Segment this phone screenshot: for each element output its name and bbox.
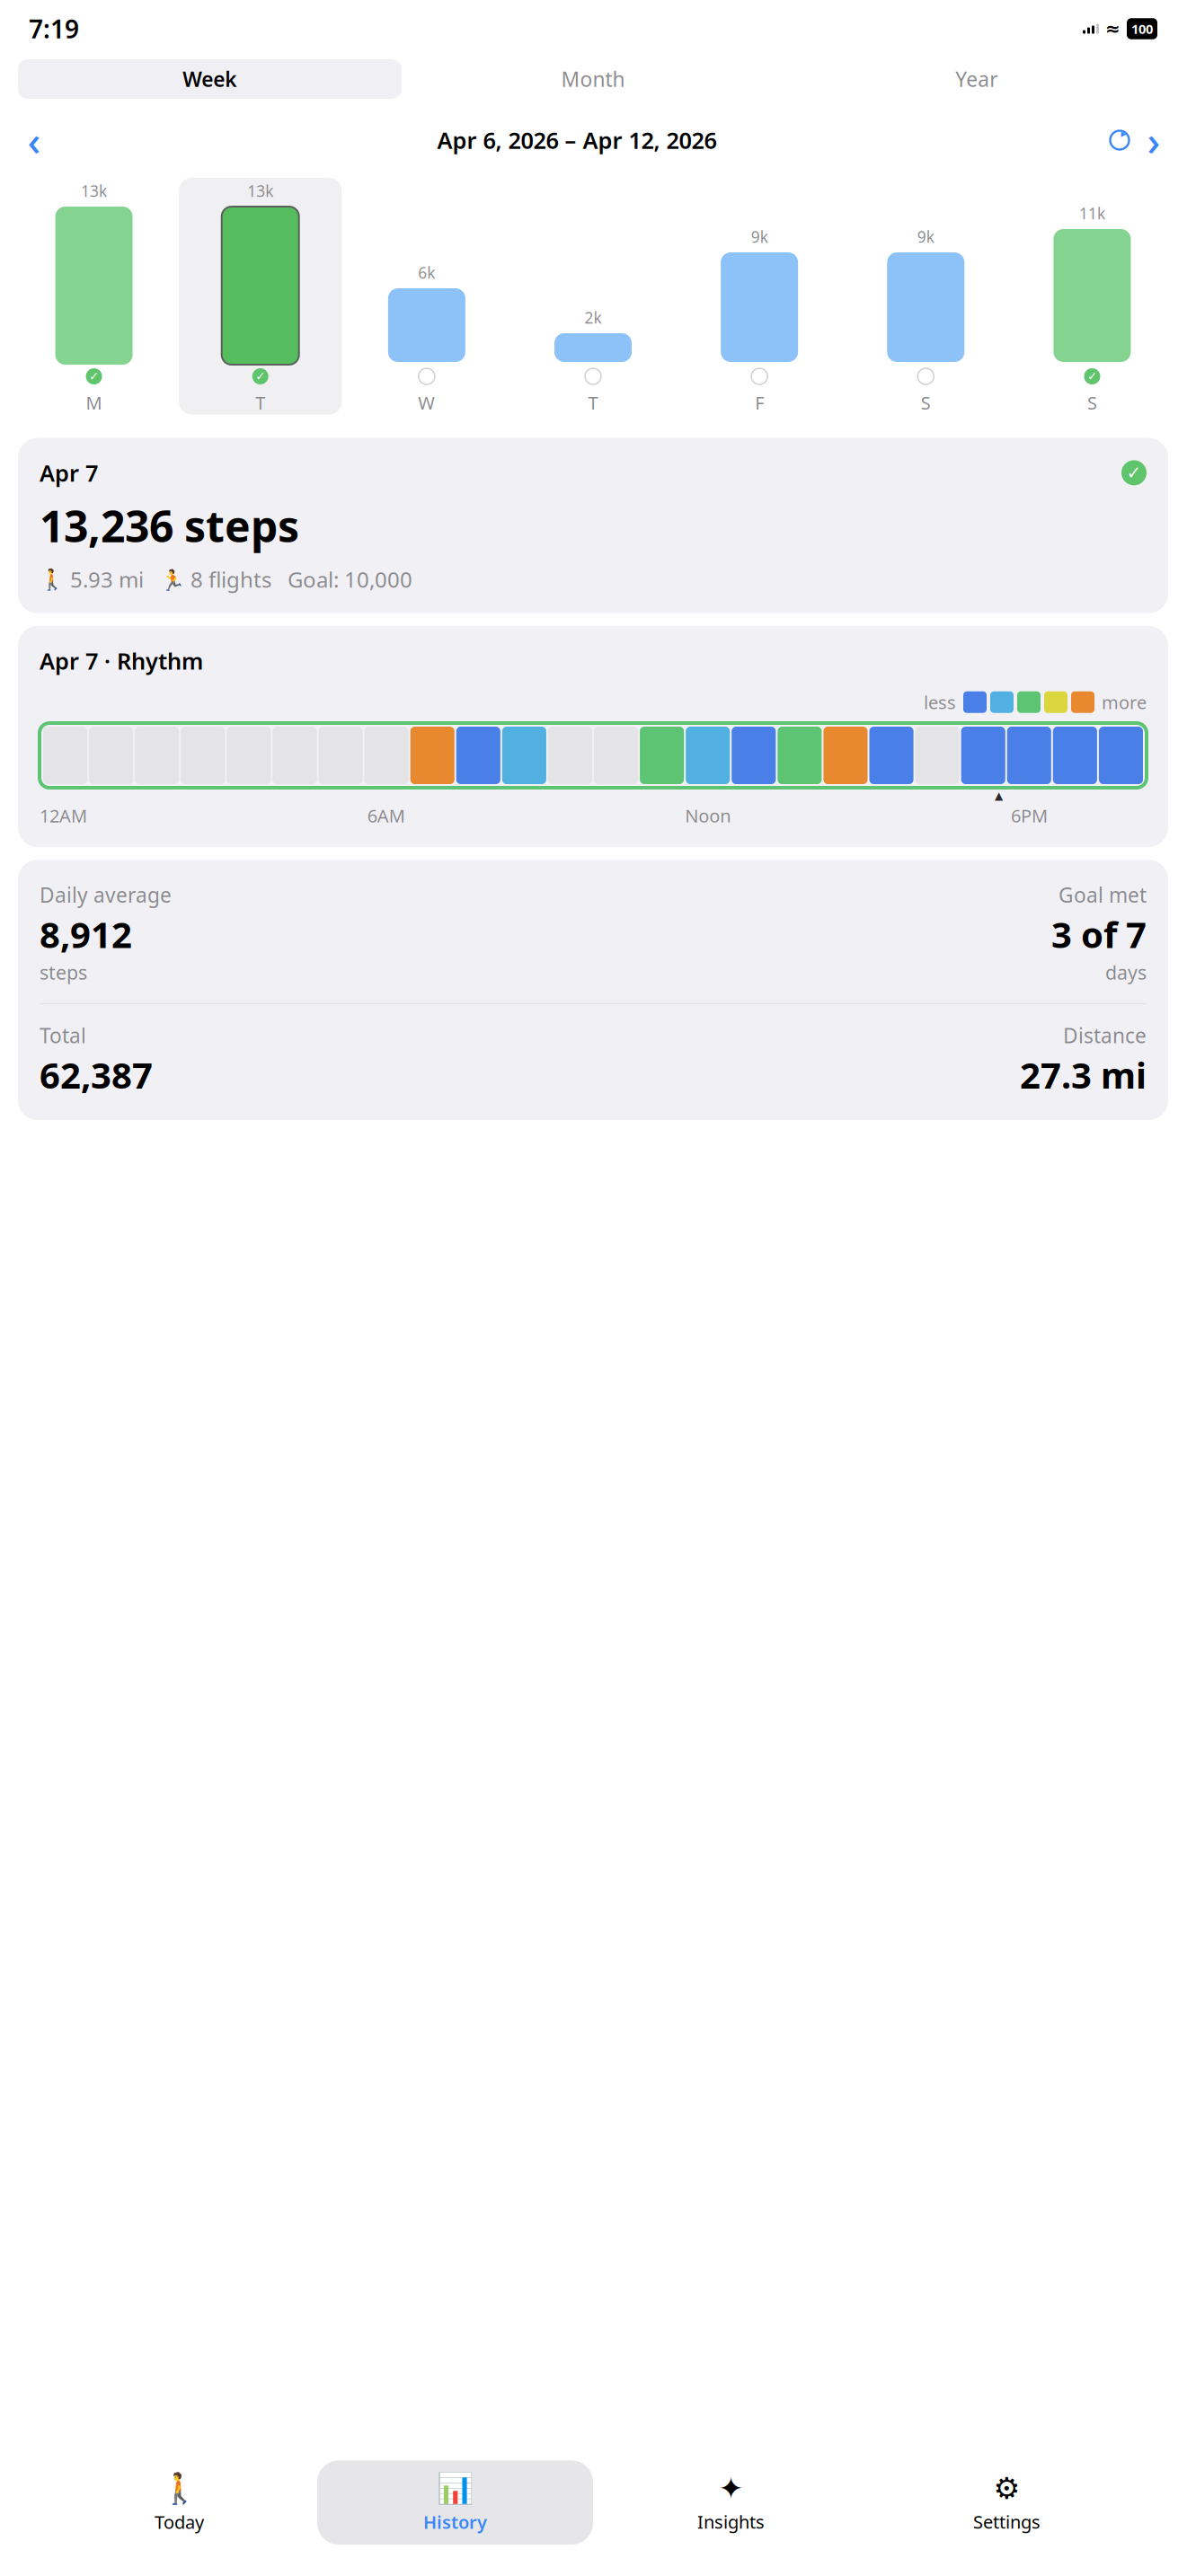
staticText: Apr 6, 2026 – Apr 12, 2026 [437, 125, 717, 155]
staticText: 📊 [436, 2471, 474, 2505]
staticText: 2k [585, 307, 602, 328]
button[interactable]: Next week [1138, 122, 1170, 158]
staticText: Today [155, 2510, 204, 2534]
staticText: 100 [1131, 20, 1153, 38]
staticText: Noon [685, 804, 731, 827]
staticText: 🚶 [40, 568, 65, 591]
button[interactable]: 2k [512, 178, 674, 415]
staticText: Apr 7 · Rhythm [40, 646, 203, 676]
staticText: Daily average [40, 881, 172, 908]
staticText: Distance [1063, 1022, 1147, 1049]
button[interactable]: Week [18, 59, 401, 99]
staticText: steps [40, 960, 87, 985]
staticText: 🏃 [144, 566, 185, 593]
staticText: ✦ [718, 2471, 744, 2505]
staticText: less [924, 690, 956, 714]
staticText: Year [955, 65, 998, 93]
staticText: 11k [1079, 203, 1105, 224]
staticText: Insights [697, 2510, 765, 2534]
staticText: 12AM [40, 804, 87, 827]
staticText: S [921, 391, 931, 415]
staticText: History [423, 2510, 487, 2534]
staticText: 6AM [367, 804, 405, 827]
button[interactable]: 6k [345, 178, 508, 415]
button[interactable]: Year [785, 59, 1168, 99]
button[interactable]: Refresh [1102, 122, 1138, 158]
staticText: 8 flights [185, 565, 271, 594]
staticText: Goal: 10,000 [271, 565, 412, 594]
button[interactable]: 11k [1011, 178, 1174, 415]
staticText: ▲ [995, 790, 1003, 802]
button[interactable]: ⚙ [869, 2461, 1145, 2544]
staticText: T [588, 391, 598, 415]
button[interactable]: 🚶 [41, 2460, 317, 2545]
staticText: ‹ [27, 113, 41, 167]
staticText: 27.3 mi [1020, 1051, 1147, 1098]
staticText: 13k [247, 181, 273, 201]
button[interactable]: Month [401, 59, 785, 99]
button[interactable]: 13k [179, 178, 342, 415]
staticText: ≈ [1105, 19, 1121, 39]
staticText: › [1147, 113, 1160, 167]
button[interactable]: Apr 7 [18, 438, 1168, 613]
staticText: S [1087, 391, 1097, 415]
staticText: F [755, 391, 764, 415]
staticText: 7:19 [29, 12, 79, 45]
staticText: Month [561, 65, 625, 93]
staticText: 9k [917, 226, 934, 247]
staticText: Week [183, 65, 237, 93]
button[interactable]: 13k [13, 178, 175, 415]
staticText: ⚙ [993, 2471, 1020, 2505]
staticText: 9k [751, 226, 768, 247]
staticText: days [1105, 960, 1147, 985]
button[interactable]: Previous week [16, 122, 52, 158]
button[interactable]: 9k [844, 178, 1007, 415]
staticText: Goal met [1059, 881, 1147, 908]
staticText: 62,387 [40, 1051, 153, 1098]
staticText: 8,912 [40, 910, 132, 958]
staticText: 6PM [1011, 804, 1048, 827]
staticText: M [86, 391, 102, 415]
staticText: Total [40, 1022, 86, 1049]
staticText: 🚶 [160, 2471, 198, 2505]
button[interactable]: 9k [678, 178, 841, 415]
staticText: 5.93 mi [65, 565, 144, 594]
staticText: 3 of 7 [1051, 910, 1147, 958]
staticText: Settings [973, 2510, 1041, 2534]
staticText: ✓ [1087, 370, 1097, 383]
button[interactable]: 📊 [317, 2460, 593, 2545]
staticText: ✓ [89, 370, 99, 383]
staticText: more [1102, 690, 1147, 714]
staticText: ▸ [1121, 127, 1126, 139]
staticText: Apr 7 [40, 458, 98, 488]
staticText: T [255, 391, 265, 415]
button[interactable]: ✦ [593, 2461, 869, 2544]
staticText: ✓ [1126, 463, 1142, 483]
staticText: W [418, 391, 435, 415]
staticText: 13,236 steps [40, 497, 299, 554]
staticText: ✓ [255, 370, 265, 383]
staticText: 13k [81, 181, 107, 201]
staticText: 6k [418, 262, 435, 283]
